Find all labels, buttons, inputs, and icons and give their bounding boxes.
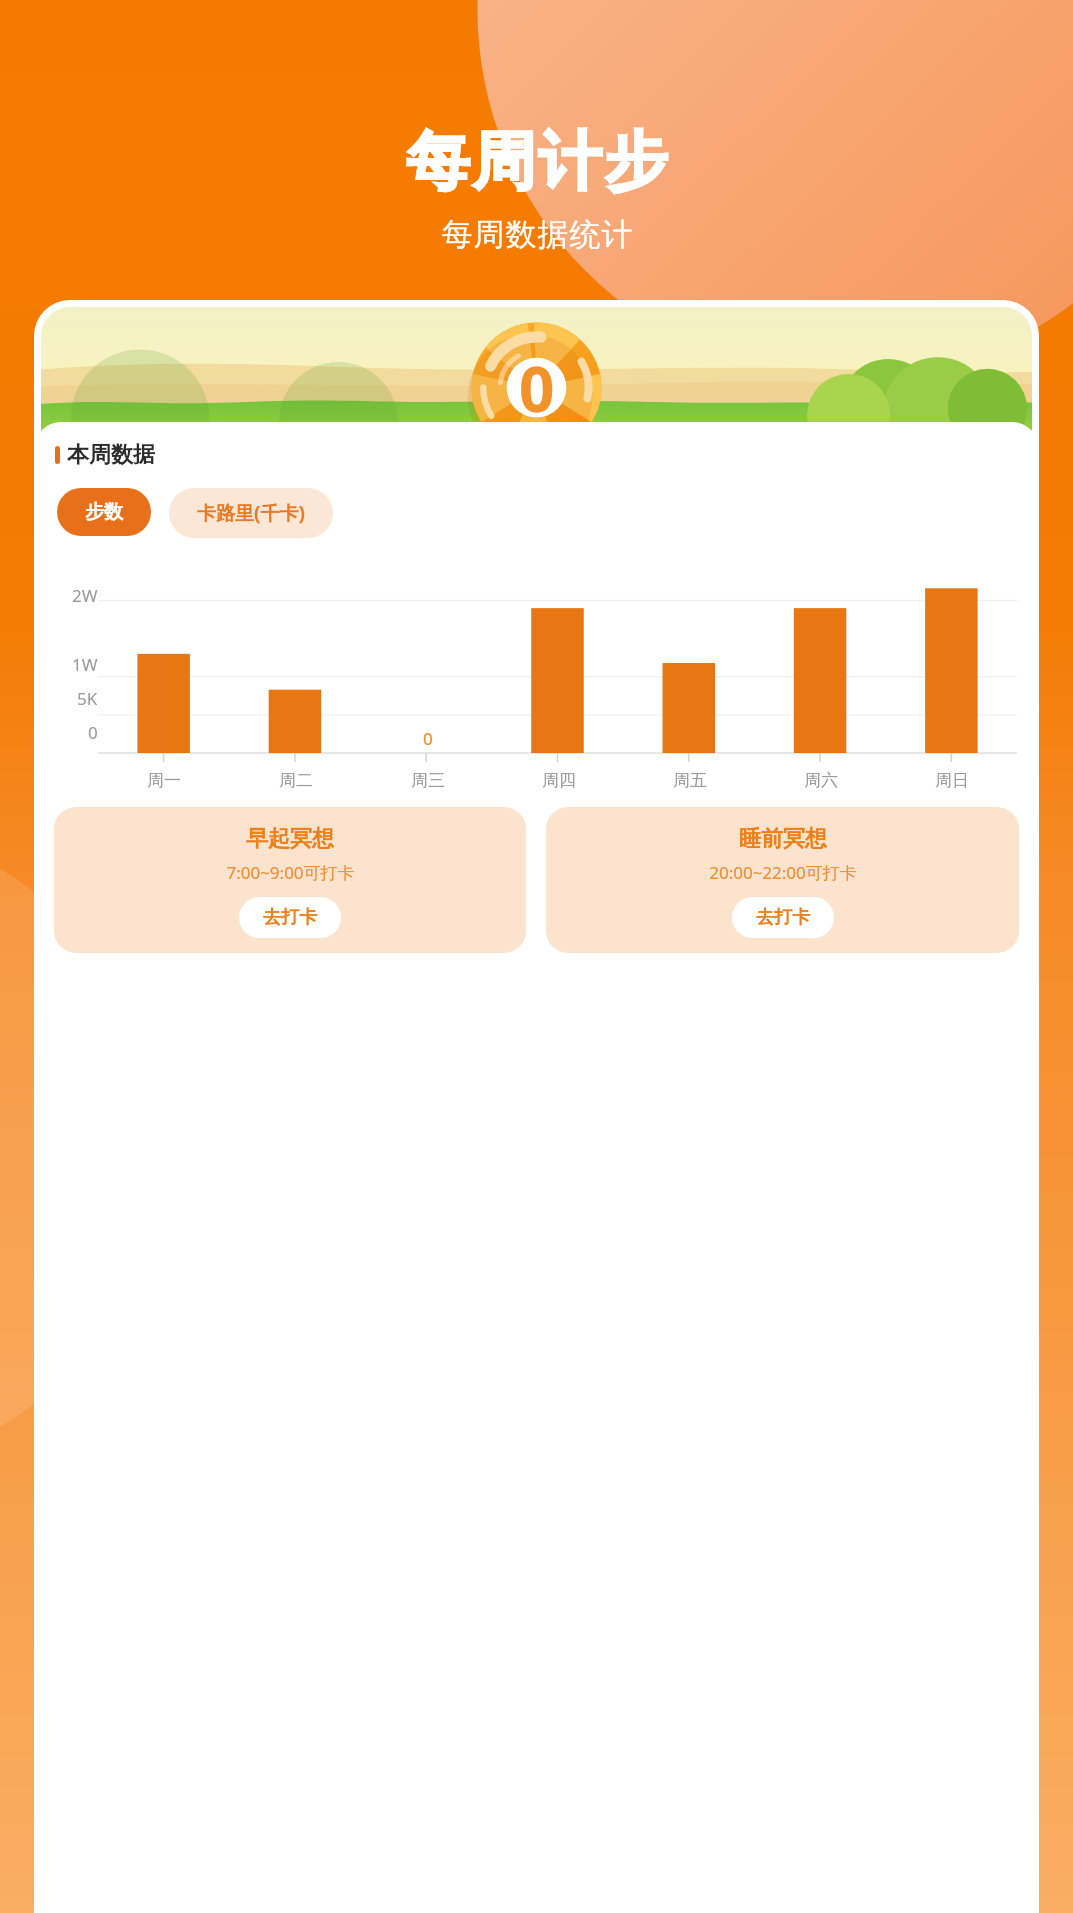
button[interactable]: 早起冥想 [54,807,526,953]
staticText: 周四 [542,770,576,791]
button[interactable]: 睡前冥想 [546,807,1019,953]
staticText: 周一 [147,770,181,791]
staticText: 7:00~9:00可打卡 [226,861,355,884]
staticText: 5K [77,687,98,710]
staticText: 周五 [673,770,707,791]
staticText: 周二 [279,770,313,791]
staticText: 0 [519,346,555,430]
button[interactable]: 步数 [57,488,151,536]
button[interactable]: 卡路里(千卡) [169,488,333,538]
staticText: 每周数据统计 [441,215,633,254]
staticText: 0 [423,727,433,750]
staticText: 去打卡 [263,906,317,929]
button[interactable]: 去打卡 [732,897,834,938]
staticText: 卡路里(千卡) [197,500,305,526]
staticText: 周日 [935,770,969,791]
staticText: 早起冥想 [246,825,334,853]
staticText: 每周计步 [405,122,669,201]
staticText: 去打卡 [756,906,810,929]
staticText: 步数 [85,500,123,524]
staticText: 周三 [411,770,445,791]
button[interactable]: 去打卡 [239,897,341,938]
staticText: 0 [88,721,98,744]
staticText: 本周数据 [67,441,155,469]
staticText: 20:00~22:00可打卡 [709,861,857,884]
staticText: 2W [72,584,98,607]
staticText: 睡前冥想 [739,825,827,853]
staticText: 1W [72,653,98,676]
staticText: 周六 [804,770,838,791]
